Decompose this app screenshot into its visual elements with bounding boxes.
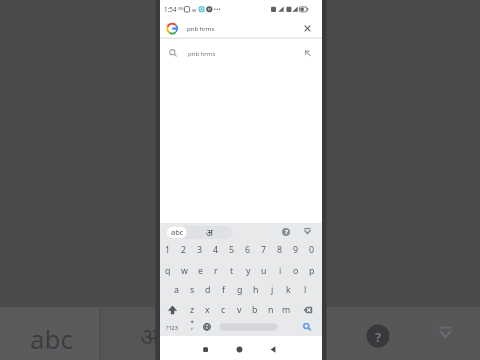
- button[interactable]: [165, 303, 180, 317]
- button[interactable]: j: [264, 280, 280, 300]
- button[interactable]: e: [192, 261, 208, 281]
- button[interactable]: 7: [256, 240, 272, 260]
- staticText: p: [309, 265, 315, 277]
- button[interactable]: [200, 320, 214, 334]
- staticText: i: [279, 265, 282, 277]
- button[interactable]: 4: [208, 240, 224, 260]
- staticText: f: [222, 284, 226, 296]
- button[interactable]: n: [263, 300, 278, 320]
- button[interactable]: 0: [304, 240, 320, 260]
- staticText: ?: [375, 328, 382, 346]
- staticText: q: [165, 265, 171, 277]
- staticText: abc: [171, 227, 184, 237]
- button[interactable]: c: [216, 300, 231, 320]
- button[interactable]: g: [232, 280, 248, 300]
- staticText: n: [268, 304, 274, 316]
- staticText: k: [286, 284, 291, 296]
- staticText: 8: [277, 244, 283, 256]
- button[interactable]: [300, 303, 316, 317]
- staticText: x: [205, 304, 210, 316]
- button[interactable]: x: [200, 300, 215, 320]
- staticText: ?: [285, 228, 288, 236]
- staticText: s: [190, 284, 195, 296]
- button[interactable]: o: [288, 261, 304, 281]
- staticText: y: [246, 265, 251, 277]
- button[interactable]: [196, 226, 222, 239]
- button[interactable]: f: [216, 280, 232, 300]
- staticText: 9: [293, 244, 299, 256]
- staticText: u: [261, 265, 267, 277]
- button[interactable]: q: [160, 261, 176, 281]
- button[interactable]: [300, 21, 316, 37]
- button[interactable]: i: [272, 261, 288, 281]
- staticText: 3: [197, 244, 203, 256]
- staticText: pnb hrms: [187, 25, 215, 33]
- staticText: abc: [30, 321, 74, 356]
- staticText: h: [253, 284, 259, 296]
- staticText: 2: [181, 244, 187, 256]
- button[interactable]: [166, 226, 187, 239]
- staticText: pnb hrms: [188, 50, 216, 58]
- staticText: ?123: [166, 324, 178, 331]
- staticText: a: [174, 284, 179, 296]
- button[interactable]: [230, 341, 248, 358]
- button[interactable]: [299, 319, 315, 335]
- staticText: l: [304, 284, 307, 296]
- button[interactable]: [300, 224, 316, 240]
- staticText: b: [252, 304, 258, 316]
- button[interactable]: 5: [224, 240, 240, 260]
- button[interactable]: v: [232, 300, 247, 320]
- button[interactable]: [278, 224, 294, 240]
- staticText: 0: [309, 244, 315, 256]
- staticText: r: [214, 265, 218, 277]
- button[interactable]: [160, 40, 322, 66]
- button[interactable]: s: [184, 280, 200, 300]
- button[interactable]: u: [256, 261, 272, 281]
- button[interactable]: [164, 320, 180, 334]
- button[interactable]: r: [208, 261, 224, 281]
- button[interactable]: अ: [199, 222, 219, 242]
- button[interactable]: y: [240, 261, 256, 281]
- staticText: v: [237, 304, 242, 316]
- button[interactable]: t: [224, 261, 240, 281]
- staticText: अ: [140, 319, 160, 353]
- staticText: 5: [229, 244, 235, 256]
- staticText: ,: [191, 320, 194, 331]
- button[interactable]: a: [168, 280, 184, 300]
- button[interactable]: [264, 341, 282, 358]
- button[interactable]: [160, 18, 322, 38]
- button[interactable]: 6: [240, 240, 256, 260]
- staticText: 4: [213, 244, 219, 256]
- button[interactable]: 9: [288, 240, 304, 260]
- staticText: 1: [165, 244, 171, 256]
- staticText: KB/s: [178, 7, 185, 11]
- staticText: m: [282, 304, 291, 316]
- staticText: c: [221, 304, 226, 316]
- button[interactable]: 1: [160, 240, 176, 260]
- staticText: 1:54: [164, 5, 177, 14]
- staticText: w: [192, 6, 197, 13]
- button[interactable]: h: [248, 280, 264, 300]
- staticText: 6: [245, 244, 251, 256]
- button[interactable]: b: [247, 300, 262, 320]
- button[interactable]: w: [176, 261, 192, 281]
- staticText: g: [237, 284, 243, 296]
- button[interactable]: k: [280, 280, 296, 300]
- button[interactable]: [185, 320, 199, 334]
- button[interactable]: d: [200, 280, 216, 300]
- staticText: j: [271, 284, 274, 296]
- staticText: e: [198, 265, 203, 277]
- button[interactable]: [196, 341, 214, 358]
- button[interactable]: l: [297, 280, 313, 300]
- staticText: अ: [206, 226, 213, 238]
- button[interactable]: 8: [272, 240, 288, 260]
- button[interactable]: m: [279, 300, 294, 320]
- button[interactable]: 2: [176, 240, 192, 260]
- button[interactable]: [219, 320, 278, 334]
- staticText: d: [205, 284, 211, 296]
- button[interactable]: z: [185, 300, 200, 320]
- button[interactable]: p: [304, 261, 320, 281]
- staticText: w: [181, 265, 188, 277]
- button[interactable]: 3: [192, 240, 208, 260]
- button[interactable]: abc: [167, 222, 187, 242]
